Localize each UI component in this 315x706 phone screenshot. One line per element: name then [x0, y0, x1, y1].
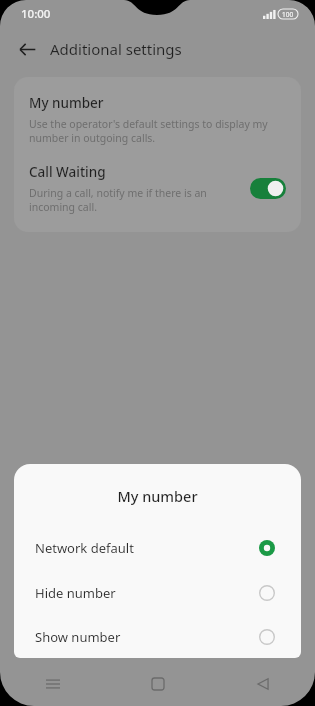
button[interactable]: Call Waiting toggle [250, 178, 286, 199]
button[interactable]: Network default [14, 525, 301, 570]
staticText: My number [29, 94, 104, 112]
button[interactable]: Call Waiting [14, 163, 301, 232]
staticText: 100 [282, 10, 294, 19]
staticText: Network default [35, 539, 259, 557]
staticText: During a call, notify me if there is an … [29, 186, 242, 214]
staticText: Use the operator's default settings to d… [29, 117, 286, 145]
button[interactable]: Show number [14, 615, 301, 658]
staticText: My number [14, 486, 301, 506]
button[interactable]: Home [105, 662, 210, 706]
button[interactable]: Recent apps [0, 662, 105, 706]
staticText: Hide number [35, 584, 259, 602]
button[interactable]: Back [10, 32, 44, 66]
staticText: Additional settings [50, 39, 182, 59]
button[interactable]: My number [14, 77, 301, 147]
staticText: 10:00 [21, 6, 51, 22]
button[interactable]: Back [210, 662, 315, 706]
button[interactable]: Hide number [14, 570, 301, 615]
staticText: Show number [35, 628, 259, 646]
staticText: Call Waiting [29, 163, 106, 181]
